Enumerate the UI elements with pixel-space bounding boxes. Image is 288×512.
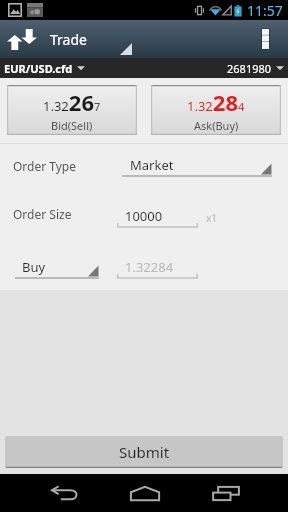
- staticText: 1.32284: [125, 258, 174, 276]
- button[interactable]: 1.32284: [151, 85, 281, 135]
- button[interactable]: More options: [242, 20, 288, 58]
- button[interactable]: 10000: [117, 205, 198, 229]
- staticText: 10000: [125, 207, 163, 225]
- staticText: x1: [206, 211, 218, 225]
- button[interactable]: 2681980: [227, 58, 284, 78]
- button[interactable]: Market: [122, 154, 272, 178]
- button[interactable]: Back: [36, 474, 92, 512]
- button[interactable]: 1.32284: [117, 256, 198, 280]
- staticText: 2681980: [227, 61, 272, 76]
- staticText: 1.32284: [187, 87, 245, 117]
- button[interactable]: 1.32267: [7, 85, 137, 135]
- button[interactable]: Trade: [6, 20, 87, 58]
- staticText: Ask(Buy): [194, 118, 239, 133]
- button[interactable]: Home: [117, 474, 173, 512]
- staticText: Order Size: [13, 206, 72, 222]
- staticText: 11:57: [247, 1, 283, 20]
- button[interactable]: EUR/USD.cfd: [4, 58, 85, 78]
- staticText: Bid(Sell): [51, 118, 93, 133]
- staticText: Submit: [119, 442, 170, 462]
- staticText: Order Type: [13, 158, 77, 174]
- staticText: EUR/USD.cfd: [4, 61, 73, 76]
- staticText: Buy: [22, 258, 46, 276]
- button[interactable]: Buy: [15, 256, 99, 280]
- button[interactable]: Submit: [5, 436, 283, 468]
- button[interactable]: Recent apps: [198, 474, 254, 512]
- staticText: Market: [130, 156, 174, 174]
- staticText: 1.32267: [43, 87, 101, 117]
- staticText: Trade: [50, 30, 87, 49]
